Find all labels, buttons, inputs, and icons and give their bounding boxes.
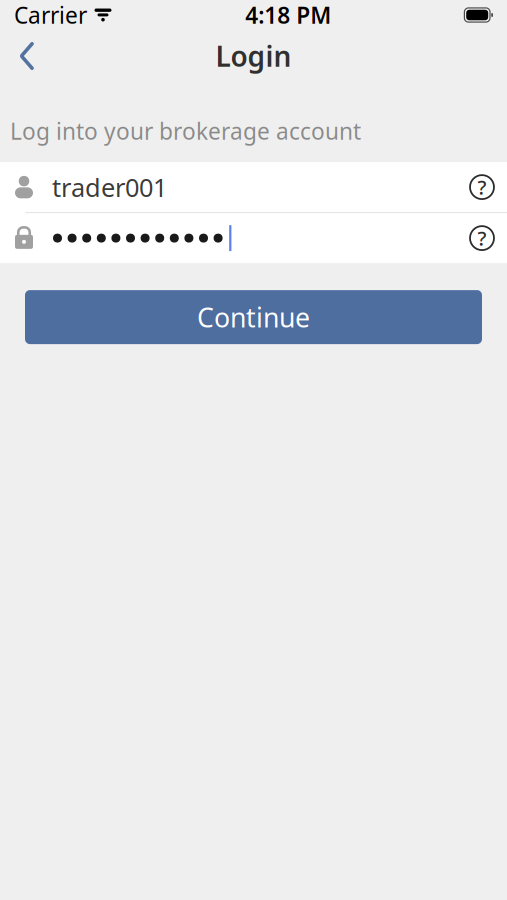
button[interactable]: Username help [457, 162, 507, 212]
staticText: trader001 [52, 170, 167, 204]
staticText: ? [477, 225, 486, 251]
staticText: ? [477, 174, 486, 200]
staticText: Login [215, 37, 291, 75]
button[interactable]: Password help [457, 213, 507, 263]
staticText: Log into your brokerage account [10, 116, 361, 146]
staticText: Continue [197, 299, 310, 335]
staticText: Carrier [14, 0, 87, 30]
button[interactable]: Continue [25, 290, 482, 344]
button[interactable]: Back [0, 30, 54, 82]
staticText: 4:18 PM [245, 0, 331, 30]
